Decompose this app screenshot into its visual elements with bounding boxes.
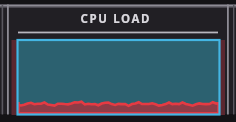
- button[interactable]: CPU load graph: [0, 0, 236, 122]
